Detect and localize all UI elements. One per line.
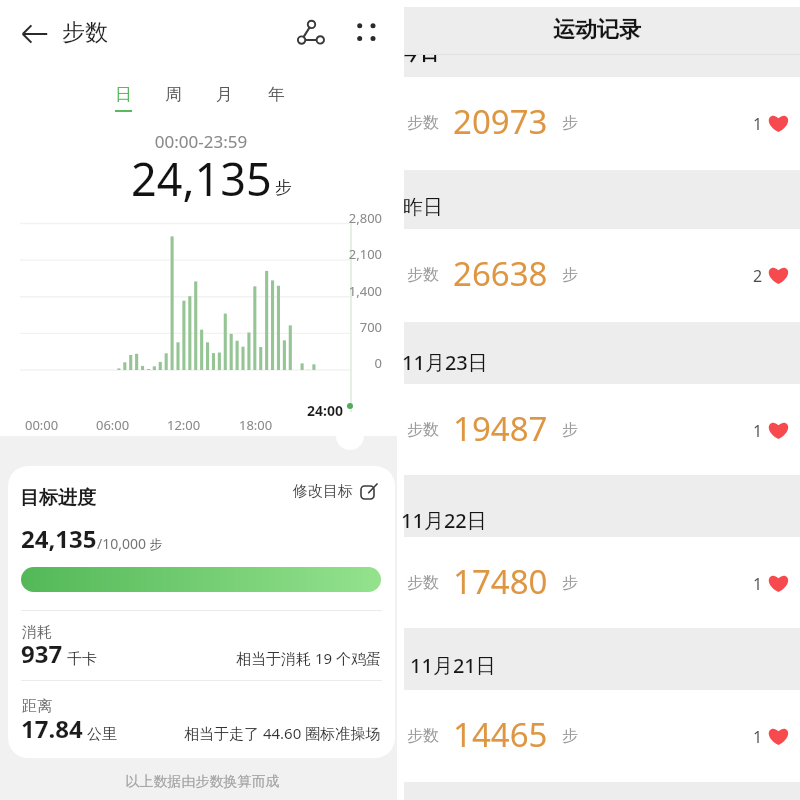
staticText: 17.84 — [21, 712, 83, 745]
staticText: 14465 — [453, 712, 548, 757]
staticText: 月 — [216, 84, 233, 105]
staticText: 修改目标 — [293, 482, 353, 501]
staticText: 12:00 — [167, 416, 201, 434]
staticText: 700 — [0, 318, 382, 336]
staticText: 00:00 — [25, 416, 59, 434]
button[interactable]: 周 — [163, 84, 184, 110]
button[interactable]: 修改目标 — [293, 482, 377, 501]
staticText: 18:00 — [239, 416, 273, 434]
staticText: 今日 — [404, 55, 439, 64]
staticText: 步 — [562, 726, 578, 746]
staticText: 步 — [275, 177, 292, 198]
staticText: 17480 — [453, 559, 548, 604]
staticText: 步 — [562, 265, 578, 285]
staticText: 昨日 — [403, 195, 443, 220]
button[interactable]: 昨日 — [404, 170, 800, 229]
staticText: 1 — [753, 573, 763, 595]
staticText: 步数 — [62, 18, 108, 47]
staticText: 1 — [753, 726, 763, 748]
button[interactable]: 步数 — [404, 537, 800, 631]
staticText: 0 — [0, 354, 382, 372]
button[interactable]: More options — [348, 12, 388, 52]
staticText: 步 — [562, 573, 578, 593]
staticText: 11月21日 — [410, 652, 496, 679]
staticText: 2,800 — [0, 209, 382, 227]
staticText: 步数 — [407, 265, 439, 285]
staticText: 相当于走了 44.60 圈标准操场 — [184, 723, 381, 743]
staticText: 24,135 — [131, 148, 272, 209]
staticText: 消耗 — [22, 623, 52, 642]
staticText: 步 — [562, 113, 578, 133]
staticText: 步 — [146, 535, 163, 553]
staticText: 11月22日 — [401, 507, 487, 534]
staticText: 距离 — [22, 697, 52, 716]
staticText: 步数 — [407, 573, 439, 593]
staticText: 周 — [165, 84, 182, 105]
staticText: 24:00 — [307, 401, 343, 420]
button[interactable]: 今日 — [404, 55, 800, 77]
staticText: 20973 — [453, 99, 548, 144]
staticText: 步 — [562, 420, 578, 440]
staticText: 00:00-23:59 — [0, 130, 403, 153]
button[interactable]: 11月23日 — [404, 322, 800, 384]
button[interactable]: 日 — [113, 84, 134, 112]
staticText: 相当于消耗 19 个鸡蛋 — [236, 648, 381, 668]
staticText: 1,400 — [0, 282, 382, 300]
button[interactable]: 步数 — [404, 229, 800, 323]
button[interactable]: 步数 — [404, 384, 800, 478]
button[interactable]: 步数 — [404, 690, 800, 784]
staticText: /10,000 — [97, 534, 146, 553]
staticText: 2,100 — [0, 245, 382, 263]
button[interactable]: Back — [15, 13, 55, 53]
staticText: 06:00 — [96, 416, 130, 434]
staticText: 2 — [753, 265, 763, 287]
staticText: 千卡 — [63, 648, 97, 668]
button[interactable]: Add record — [336, 422, 364, 450]
staticText: 年 — [268, 84, 285, 105]
button[interactable]: Share — [289, 10, 333, 54]
staticText: 运动记录 — [553, 16, 641, 44]
staticText: 公里 — [83, 723, 117, 743]
staticText: 26638 — [453, 251, 548, 296]
button[interactable]: 11月21日 — [404, 628, 800, 690]
button[interactable]: 月 — [214, 84, 235, 110]
staticText: 步数 — [407, 113, 439, 133]
button[interactable]: 11月22日 — [404, 475, 800, 537]
staticText: 937 — [21, 637, 63, 670]
staticText: 1 — [753, 420, 763, 442]
staticText: 11月23日 — [402, 349, 488, 376]
staticText: 1 — [753, 113, 763, 135]
staticText: 步数 — [407, 726, 439, 746]
staticText: 19487 — [453, 406, 548, 451]
staticText: 以上数据由步数换算而成 — [4, 773, 401, 791]
staticText: 目标进度 — [20, 486, 96, 510]
staticText: 日 — [115, 84, 132, 105]
staticText: 步数 — [407, 420, 439, 440]
button[interactable]: 步数 — [404, 77, 800, 171]
button[interactable]: 年 — [266, 84, 287, 110]
staticText: 24,135 — [21, 522, 97, 555]
